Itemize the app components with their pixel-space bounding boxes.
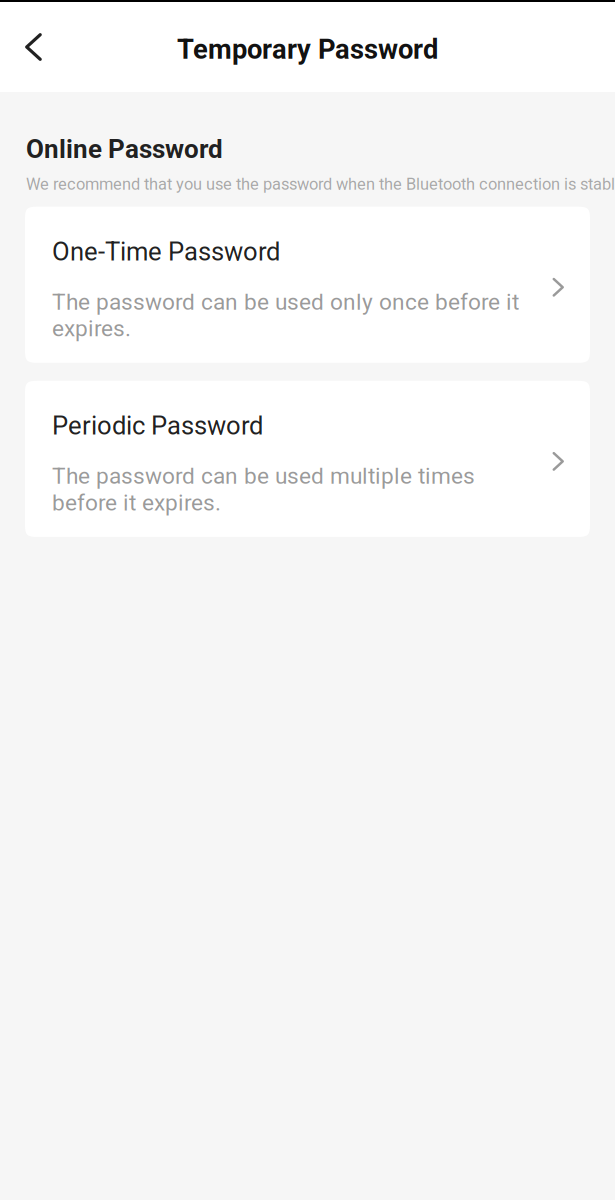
staticText: Online Password bbox=[26, 134, 223, 164]
staticText: Temporary Password bbox=[177, 33, 438, 65]
staticText: The password can be used only once befor… bbox=[52, 289, 519, 342]
staticText: The password can be used multiple times … bbox=[52, 463, 475, 516]
button[interactable]: One-Time Password bbox=[25, 207, 590, 363]
button[interactable]: Back bbox=[0, 17, 61, 77]
staticText: One-Time Password bbox=[52, 237, 280, 267]
staticText: We recommend that you use the password w… bbox=[26, 174, 615, 194]
button[interactable]: Periodic Password bbox=[25, 381, 590, 537]
staticText: Periodic Password bbox=[52, 411, 263, 441]
